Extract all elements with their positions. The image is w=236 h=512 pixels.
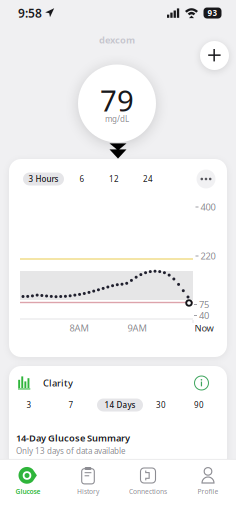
staticText: 40	[199, 309, 209, 322]
button[interactable]: 24	[135, 169, 161, 189]
button[interactable]: 12	[101, 169, 127, 189]
staticText: 14 Days	[104, 400, 135, 410]
button[interactable]: 90	[186, 395, 212, 415]
button[interactable]: Information	[189, 371, 213, 395]
staticText: 24	[143, 174, 153, 184]
button[interactable]: 3 Hours	[20, 169, 67, 189]
staticText: 3 Hours	[28, 174, 58, 184]
button[interactable]: 30	[148, 395, 174, 415]
staticText: dexcom	[99, 34, 135, 46]
staticText: mg/dL	[105, 114, 129, 124]
staticText: 400	[200, 201, 215, 213]
staticText: 90	[194, 400, 204, 410]
staticText: Glucose	[15, 487, 40, 496]
button[interactable]: 7	[58, 395, 84, 415]
button[interactable]: More options	[193, 166, 219, 192]
staticText: Profile	[197, 487, 218, 496]
button[interactable]: Profile	[178, 459, 236, 503]
staticText: 220	[200, 250, 215, 262]
staticText: 12	[109, 174, 119, 184]
button[interactable]: History	[58, 459, 117, 503]
staticText: 75	[199, 298, 209, 311]
staticText: Only 13 days of data available	[16, 446, 126, 456]
button[interactable]: Glucose	[0, 459, 57, 503]
staticText: 30	[156, 400, 166, 410]
staticText: 7	[68, 400, 73, 410]
staticText: 93	[207, 8, 217, 18]
button[interactable]: Add	[195, 36, 233, 74]
staticText: 9AM	[127, 322, 146, 334]
staticText: 3	[26, 400, 31, 410]
staticText: Now	[194, 322, 213, 334]
staticText: Connections	[129, 487, 167, 496]
staticText: 8AM	[69, 322, 88, 334]
button[interactable]: 14 Days	[94, 395, 146, 415]
button[interactable]: 6	[69, 169, 95, 189]
staticText: 6	[79, 174, 84, 184]
staticText: Clarity	[43, 377, 73, 389]
staticText: 79	[100, 80, 134, 119]
staticText: History	[77, 487, 99, 496]
staticText: 14-Day Glucose Summary	[16, 432, 130, 444]
button[interactable]: Connections	[118, 459, 177, 503]
button[interactable]: 3	[16, 395, 42, 415]
staticText: 9:58	[18, 5, 42, 21]
